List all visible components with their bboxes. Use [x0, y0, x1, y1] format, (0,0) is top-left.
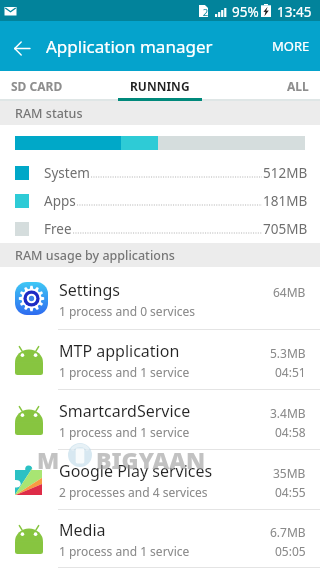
staticText: Apps: [44, 192, 76, 210]
staticText: 181MB: [263, 192, 308, 210]
button[interactable]: Apps: [0, 187, 320, 215]
staticText: 1 process and 1 service: [59, 543, 275, 559]
staticText: 3.4MB: [270, 405, 306, 421]
button[interactable]: System: [0, 159, 320, 187]
button[interactable]: RUNNING: [108, 71, 212, 101]
button[interactable]: Back: [0, 21, 44, 71]
staticText: 04:51: [275, 364, 306, 380]
staticText: 512MB: [263, 164, 308, 182]
staticText: Settings: [59, 279, 273, 301]
button[interactable]: Free: [0, 215, 320, 243]
staticText: RAM usage by applications: [15, 247, 175, 264]
staticText: MTP application: [59, 340, 270, 362]
staticText: Free: [44, 220, 72, 238]
button[interactable]: SmartcardService: [0, 390, 320, 450]
staticText: 2: [201, 6, 210, 19]
button[interactable]: ALL: [246, 71, 320, 101]
button[interactable]: SD CARD: [0, 71, 89, 101]
button[interactable]: Media: [0, 510, 320, 568]
staticText: Media: [59, 519, 270, 541]
staticText: RUNNING: [130, 78, 190, 94]
staticText: RAM status: [15, 105, 83, 122]
staticText: 2 processes and 4 services: [59, 484, 275, 500]
staticText: 1 process and 1 service: [59, 364, 275, 380]
staticText: 1 process and 1 service: [59, 424, 275, 440]
button[interactable]: MTP application: [0, 330, 320, 390]
staticText: 95%: [232, 3, 259, 21]
staticText: 705MB: [263, 220, 308, 238]
button[interactable]: Settings: [0, 267, 320, 330]
staticText: 04:55: [275, 484, 306, 500]
staticText: 35MB: [273, 465, 306, 481]
staticText: M: [37, 444, 60, 475]
staticText: SmartcardService: [59, 400, 270, 422]
staticText: ALL: [287, 78, 309, 94]
staticText: 6.7MB: [270, 524, 306, 540]
staticText: MORE: [272, 37, 310, 55]
staticText: System: [44, 164, 90, 182]
button[interactable]: MORE: [258, 21, 320, 71]
staticText: BIGYAAN: [96, 444, 206, 475]
staticText: SD CARD: [11, 78, 63, 94]
staticText: 13:45: [277, 3, 312, 21]
staticText: Google Play services: [59, 460, 273, 482]
staticText: 5.3MB: [270, 345, 306, 361]
staticText: 64MB: [273, 284, 306, 300]
staticText: 04:58: [275, 424, 306, 440]
staticText: Application manager: [46, 35, 213, 58]
button[interactable]: Google Play services: [0, 450, 320, 510]
staticText: 1 process and 0 services: [59, 303, 306, 319]
staticText: 05:05: [275, 543, 306, 559]
